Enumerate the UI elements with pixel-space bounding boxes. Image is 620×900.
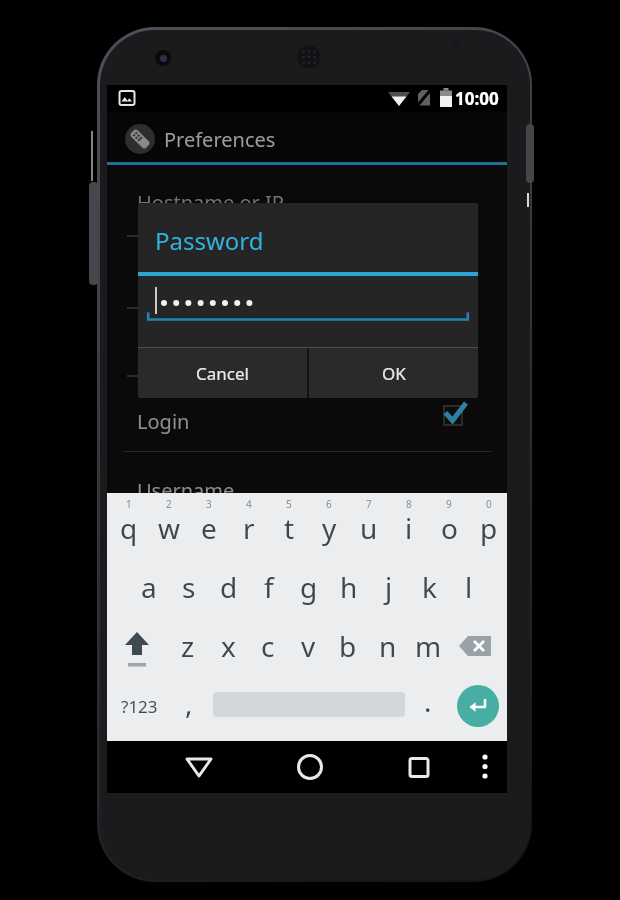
button[interactable]: m [408,624,448,668]
staticText: u [360,509,378,547]
staticText: i [405,509,413,547]
staticText: 1 [126,497,132,511]
button[interactable]: y [309,507,349,549]
button[interactable]: i [389,507,429,549]
button[interactable]: h [329,565,369,609]
staticText: 7 [366,497,372,511]
button[interactable]: p [469,507,509,549]
button[interactable]: Preferences [107,112,507,165]
button[interactable] [290,747,330,787]
staticText: a [141,568,157,606]
button[interactable]: n [368,624,408,668]
staticText: s [182,568,196,606]
button[interactable] [455,624,501,668]
staticText: z [181,627,195,665]
staticText: f [264,568,274,606]
button[interactable] [179,747,219,787]
staticText: 3 [206,497,212,511]
staticText: j [385,568,393,606]
button[interactable]: f [249,565,289,609]
button[interactable]: s [169,565,209,609]
button[interactable]: v [288,624,328,668]
staticText: 10:00 [455,87,499,110]
staticText: x [221,627,236,665]
button[interactable]: x [208,624,248,668]
staticText: d [220,568,238,606]
staticText: q [120,509,138,547]
button[interactable]: o [429,507,469,549]
button[interactable]: . [408,681,448,721]
staticText: r [243,509,255,547]
staticText: t [284,509,295,547]
staticText: Cancel [196,362,249,385]
staticText: Preferences [164,126,276,153]
button[interactable]: Cancel [138,348,307,398]
button[interactable]: k [409,565,449,609]
staticText: Login [137,408,190,434]
staticText: k [422,568,437,606]
staticText: g [300,568,318,606]
staticText: 4 [246,497,252,511]
button[interactable]: t [269,507,309,549]
button[interactable]: j [369,565,409,609]
button[interactable]: u [349,507,389,549]
button[interactable]: , [169,683,209,723]
button[interactable] [441,403,469,431]
button[interactable]: e [189,507,229,549]
staticText: 5 [286,497,292,511]
staticText: , [185,684,193,722]
staticText: Hostname or IP [137,189,284,215]
staticText: m [415,627,442,665]
button[interactable]: r [229,507,269,549]
staticText: c [261,627,275,665]
button[interactable]: d [209,565,249,609]
button[interactable]: l [449,565,489,609]
button[interactable]: z [168,624,208,668]
button[interactable]: c [248,624,288,668]
staticText: l [465,568,473,606]
staticText: . [424,682,432,720]
staticText: 6 [326,497,332,511]
staticText: ?123 [121,695,158,718]
staticText: e [201,509,217,547]
staticText: 2 [166,497,172,511]
button[interactable] [469,747,501,787]
button[interactable]: w [149,507,189,549]
button[interactable] [399,747,439,787]
staticText: y [322,509,337,547]
staticText: 8 [406,497,412,511]
button[interactable] [117,624,157,668]
button[interactable]: ?123 [115,686,163,726]
staticText: Password [155,224,264,257]
button[interactable]: q [109,507,149,549]
button[interactable]: a [129,565,169,609]
button[interactable]: b [328,624,368,668]
button[interactable]: OK [309,348,478,398]
staticText: h [340,568,358,606]
staticText: 0 [486,497,492,511]
staticText: b [339,627,357,665]
staticText: w [158,509,181,547]
staticText: Username [137,477,235,503]
staticText: o [441,509,458,547]
staticText: n [379,627,397,665]
button[interactable] [457,685,499,727]
staticText: v [301,627,316,665]
staticText: p [480,509,498,547]
staticText: 9 [446,497,452,511]
button[interactable]: g [289,565,329,609]
staticText: OK [382,362,406,385]
